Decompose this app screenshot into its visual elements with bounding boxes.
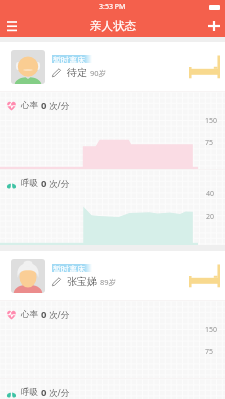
button[interactable]: 暂时离床: [0, 251, 225, 300]
staticText: 75: [205, 138, 214, 148]
button[interactable]: 暂时离床: [0, 42, 225, 91]
staticText: 呼吸: [21, 387, 38, 398]
staticText: 0: [41, 308, 47, 321]
staticText: 呼吸: [21, 178, 38, 189]
staticText: 心率: [21, 100, 38, 111]
staticText: 亲人状态: [90, 19, 136, 33]
staticText: 次/分: [49, 100, 70, 112]
staticText: 次/分: [49, 178, 70, 190]
staticText: 0: [41, 99, 47, 112]
staticText: 次/分: [49, 387, 70, 399]
button[interactable]: Menu: [0, 14, 23, 37]
staticText: 暂时离床: [53, 55, 85, 63]
button[interactable]: Add: [202, 14, 225, 37]
staticText: 暂时离床: [53, 264, 85, 272]
staticText: 90岁: [90, 68, 107, 78]
staticText: 次/分: [49, 309, 70, 321]
staticText: 150: [205, 325, 218, 335]
staticText: 待定: [67, 66, 87, 79]
staticText: 0: [41, 177, 47, 190]
staticText: 150: [205, 116, 218, 126]
staticText: 心率: [21, 309, 38, 320]
staticText: 20: [206, 212, 215, 222]
staticText: 40: [206, 189, 215, 199]
staticText: 张宝娣: [67, 275, 97, 288]
staticText: 0: [41, 386, 47, 399]
staticText: 75: [205, 347, 214, 357]
staticText: 89岁: [100, 277, 117, 287]
staticText: 3:53 PM: [99, 2, 126, 12]
